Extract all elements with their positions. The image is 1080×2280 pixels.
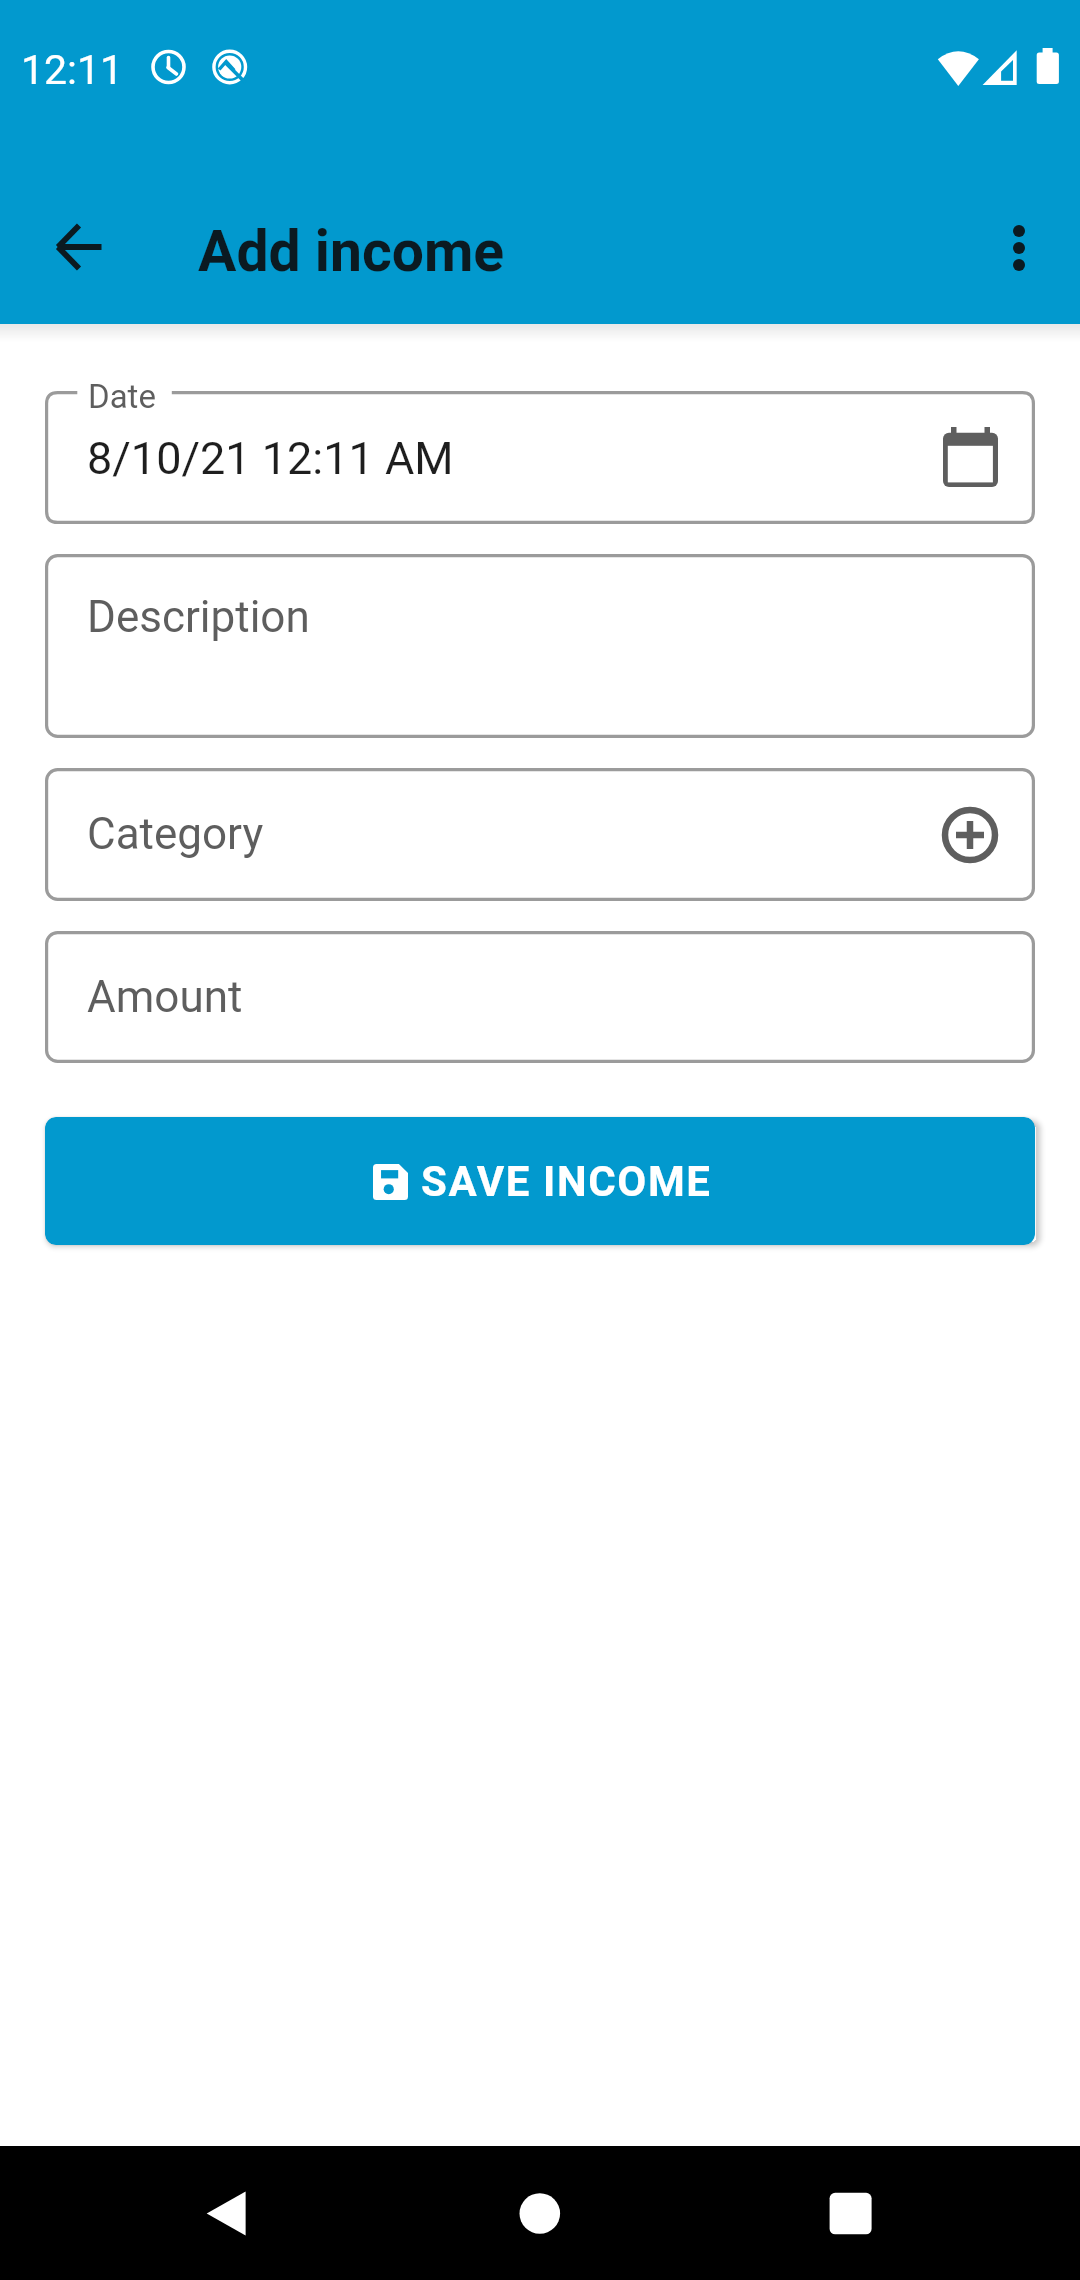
button[interactable]: Amount	[45, 931, 1035, 1063]
staticText: Amount	[87, 971, 243, 1023]
staticText: Description	[87, 591, 310, 643]
staticText: Date	[88, 377, 156, 416]
button[interactable]: SAVE INCOME	[45, 1117, 1035, 1245]
staticText: Add income	[198, 218, 505, 285]
staticText: 12:11	[21, 46, 124, 94]
staticText: Category	[87, 808, 264, 860]
button[interactable]: Pick date	[943, 427, 998, 488]
button[interactable]: Description	[45, 554, 1035, 738]
staticText: 8/10/21 12:11 AM	[87, 432, 454, 485]
button[interactable]: Date	[45, 391, 1035, 524]
button[interactable]: Add category	[941, 806, 999, 864]
button[interactable]: More options	[963, 192, 1075, 304]
button[interactable]: Back	[22, 191, 134, 303]
button[interactable]: Category	[45, 768, 1035, 901]
staticText: SAVE INCOME	[421, 1157, 712, 1206]
